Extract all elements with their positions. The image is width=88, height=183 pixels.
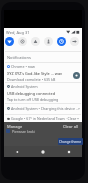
button[interactable]: Flashlight: [44, 37, 53, 46]
button[interactable]: Internet: [5, 37, 14, 46]
staticText: Manage: [7, 124, 23, 129]
staticText: Wed, Aug 31: [6, 30, 30, 35]
button[interactable]: Chrome • now: [4, 62, 82, 81]
button[interactable]: Home: [30, 146, 56, 157]
button[interactable]: Recents: [56, 146, 82, 157]
staticText: XYZ XYZ's God-like Style ... wav: [7, 71, 63, 76]
button[interactable]: Manage: [6, 123, 24, 130]
staticText: Android System: [11, 84, 38, 89]
staticText: Chrome • now: [11, 64, 35, 69]
staticText: USB debugging connected: [7, 91, 56, 96]
staticText: Pierwsze kroki: [12, 129, 35, 134]
button[interactable]: Auto rotate: [57, 37, 66, 46]
button[interactable]: Back: [4, 146, 30, 157]
button[interactable]: Change theme: [58, 138, 83, 145]
button[interactable]: Do Not Disturb: [31, 37, 40, 46]
staticText: Change theme: [59, 140, 82, 144]
staticText: Clear all: [63, 124, 79, 129]
staticText: Google • 67° in Nederland Town · Clear: [11, 116, 77, 121]
staticText: Tap to turn off USB debugging: [7, 97, 59, 102]
button[interactable]: Android System • Charging this device vi…: [4, 103, 82, 113]
button[interactable]: Clear all: [62, 123, 80, 130]
button[interactable]: Google • 67° in Nederland Town · Clear: [4, 114, 82, 123]
button[interactable]: Expand: [70, 37, 79, 46]
button[interactable]: Android System: [4, 82, 82, 102]
staticText: Android System • Charging this device vi…: [11, 106, 79, 111]
button[interactable]: Bluetooth: [18, 37, 27, 46]
staticText: Notifications: [7, 55, 31, 60]
staticText: Download complete • 635 kB: [7, 77, 56, 81]
